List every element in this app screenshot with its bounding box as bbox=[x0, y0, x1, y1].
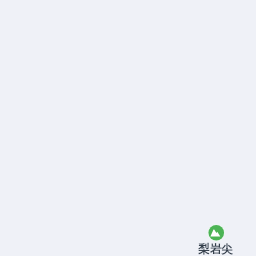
staticText: 梨岩尖 bbox=[198, 242, 233, 256]
button[interactable]: 梨岩尖 scenic spot marker bbox=[204, 221, 228, 245]
button[interactable]: 梨岩尖 bbox=[198, 242, 233, 256]
